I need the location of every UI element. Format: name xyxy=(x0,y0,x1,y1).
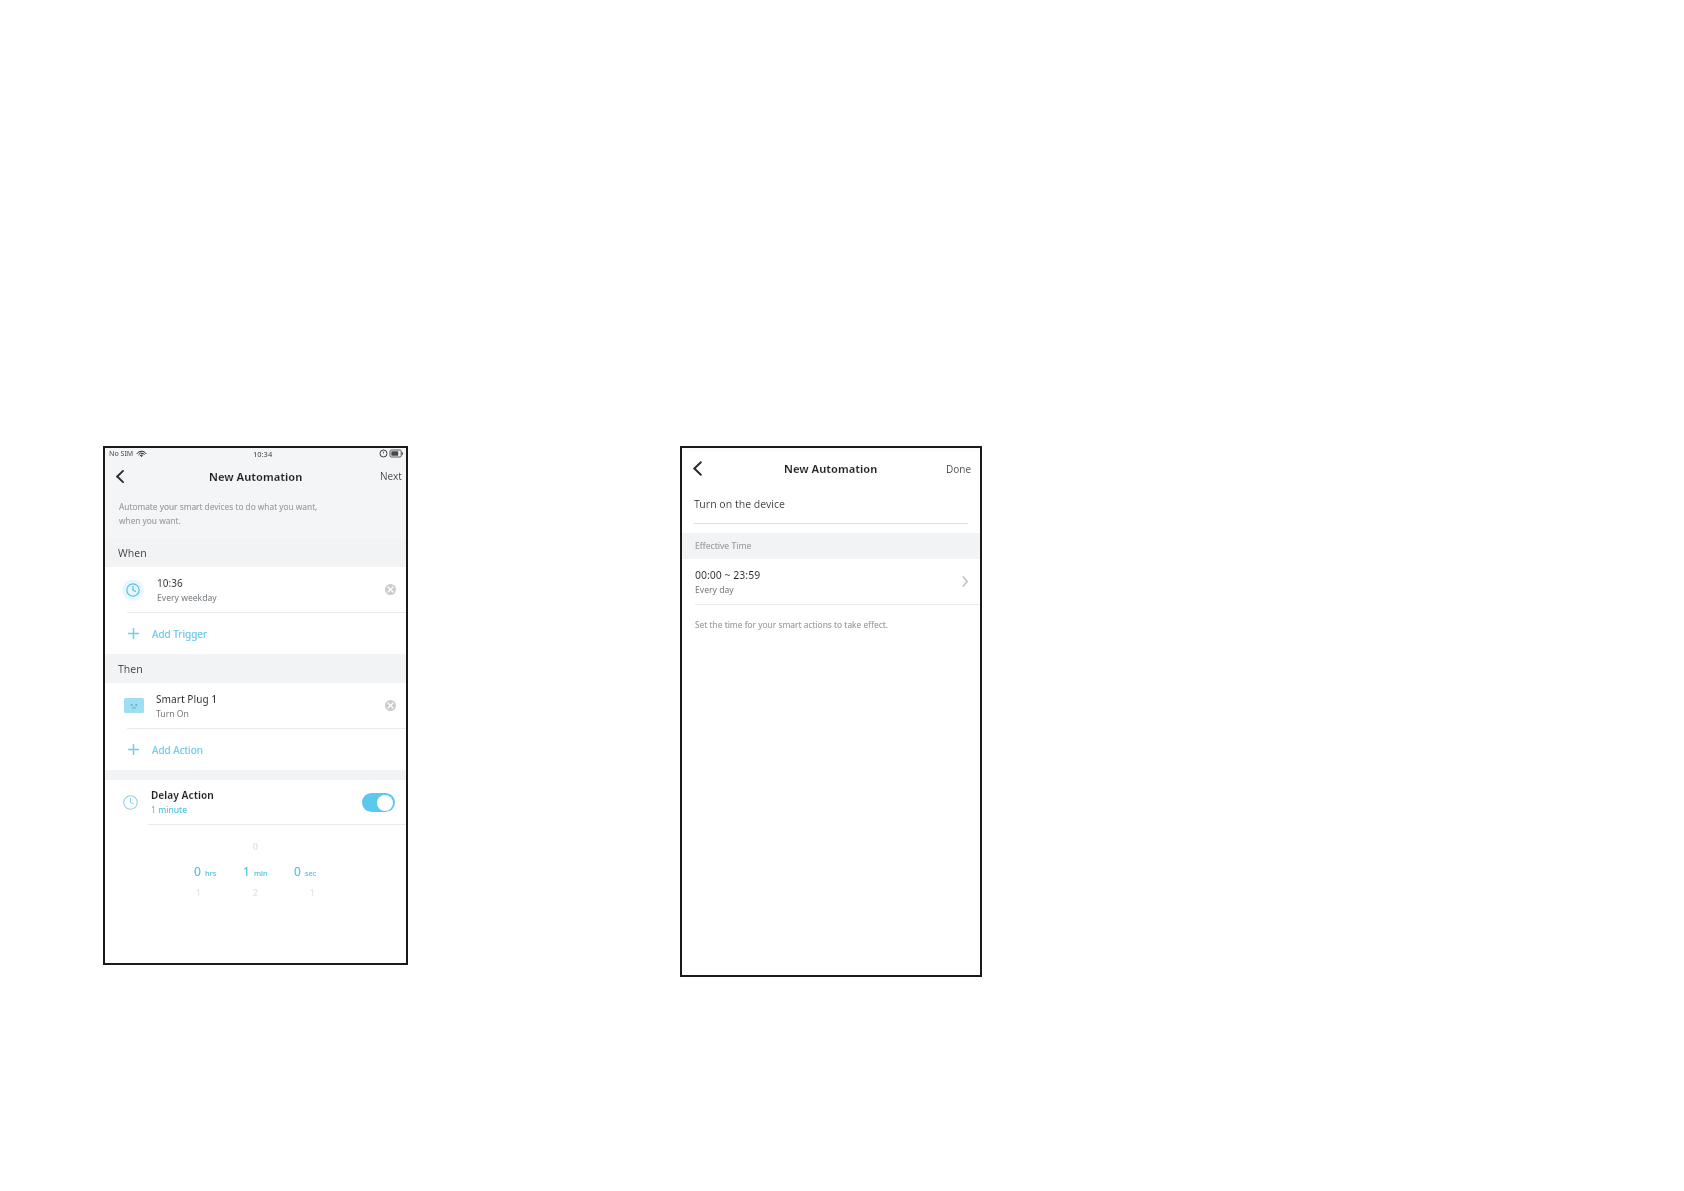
staticText: hrs xyxy=(205,868,217,878)
button[interactable]: Remove action xyxy=(385,700,396,711)
button[interactable]: Add Trigger xyxy=(103,613,408,654)
staticText: Turn on the device xyxy=(694,497,786,511)
button[interactable]: Remove trigger xyxy=(385,584,396,595)
staticText: Delay Action xyxy=(151,788,214,802)
staticText: Every day xyxy=(695,584,734,596)
button[interactable]: Add Action xyxy=(103,729,408,770)
staticText: Then xyxy=(118,662,143,676)
staticText: 1 xyxy=(310,887,315,899)
staticText: No SIM xyxy=(109,449,134,459)
staticText: 0 xyxy=(194,863,201,879)
staticText: sec xyxy=(305,868,317,878)
button[interactable]: Smart Plug 1 xyxy=(103,683,408,728)
staticText: 10:36 xyxy=(157,576,183,590)
staticText: New Automation xyxy=(784,461,878,476)
staticText: 1 xyxy=(243,863,250,879)
staticText: Automate your smart devices to do what y… xyxy=(119,501,318,512)
staticText: Done xyxy=(946,462,972,476)
button[interactable]: Next xyxy=(380,469,402,483)
staticText: 0 xyxy=(294,863,301,879)
staticText: 1 xyxy=(196,887,201,899)
staticText: 1 minute xyxy=(151,804,187,816)
button[interactable]: 00:00 ~ 23:59 xyxy=(680,559,982,604)
button[interactable]: 10:36 xyxy=(103,567,408,612)
staticText: 2 xyxy=(253,887,258,899)
button[interactable]: Delay Action toggle xyxy=(362,793,395,812)
staticText: Effective Time xyxy=(695,540,752,552)
staticText: 00:00 ~ 23:59 xyxy=(695,568,761,582)
button[interactable]: Delay Action xyxy=(103,780,408,824)
staticText: When xyxy=(118,546,147,560)
button[interactable]: Turn on the device xyxy=(694,485,982,523)
button[interactable]: Back xyxy=(680,452,716,485)
staticText: Turn On xyxy=(156,708,189,720)
button[interactable]: Back xyxy=(103,461,137,491)
staticText: Smart Plug 1 xyxy=(156,692,217,706)
staticText: 10:34 xyxy=(253,449,273,459)
staticText: 0 xyxy=(253,841,258,853)
staticText: Add Trigger xyxy=(152,627,208,641)
staticText: New Automation xyxy=(209,469,303,484)
staticText: Every weekday xyxy=(157,592,217,604)
staticText: Set the time for your smart actions to t… xyxy=(695,619,889,630)
staticText: Add Action xyxy=(152,743,203,757)
staticText: min xyxy=(254,868,268,878)
staticText: when you want. xyxy=(119,515,181,526)
staticText: Next xyxy=(380,469,402,483)
button[interactable]: Done xyxy=(946,462,972,476)
